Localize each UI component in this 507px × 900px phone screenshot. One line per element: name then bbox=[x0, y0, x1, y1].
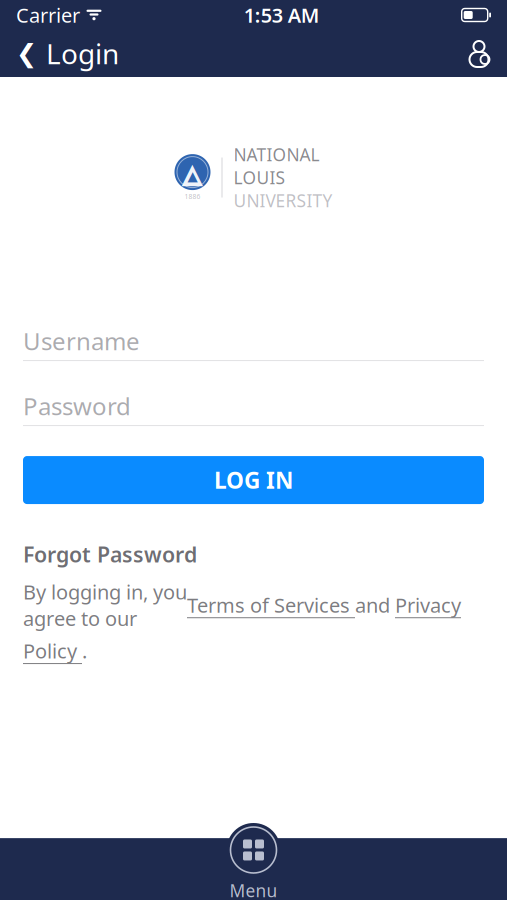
staticText: ❮ bbox=[16, 39, 37, 68]
staticText: Carrier bbox=[16, 2, 80, 28]
staticText: Policy bbox=[23, 637, 82, 664]
button[interactable]: Username bbox=[0, 322, 507, 361]
button[interactable]: Privacy bbox=[395, 592, 461, 618]
staticText: UNIVERSITY bbox=[233, 189, 332, 212]
staticText: Username bbox=[23, 325, 140, 357]
staticText: LOUIS bbox=[233, 166, 285, 189]
staticText: Forgot Password bbox=[23, 540, 197, 568]
staticText: . bbox=[82, 637, 87, 664]
button[interactable]: ❮ bbox=[0, 30, 135, 77]
staticText: NATIONAL bbox=[233, 143, 319, 166]
button[interactable]: Menu bbox=[226, 823, 280, 900]
button[interactable]: Forgot Password bbox=[23, 540, 197, 568]
staticText: Terms of Services bbox=[187, 592, 355, 618]
staticText: LOG IN bbox=[214, 465, 293, 495]
staticText: 1:53 AM bbox=[244, 2, 320, 28]
staticText: Login bbox=[46, 35, 119, 72]
staticText: ▲ bbox=[187, 168, 197, 184]
button[interactable]: Register bbox=[449, 30, 507, 77]
staticText: and bbox=[355, 592, 395, 618]
staticText: 1886 bbox=[184, 192, 200, 201]
button[interactable]: Policy bbox=[23, 637, 82, 664]
staticText: ▲ bbox=[181, 157, 203, 189]
staticText: Password bbox=[23, 390, 131, 422]
staticText: Privacy bbox=[395, 592, 461, 618]
staticText: By logging in, you agree to our bbox=[23, 578, 187, 631]
button[interactable]: Terms of Services bbox=[187, 592, 355, 618]
button[interactable]: Password bbox=[0, 387, 507, 426]
staticText: Menu bbox=[229, 879, 277, 900]
button[interactable]: LOG IN bbox=[23, 456, 484, 504]
